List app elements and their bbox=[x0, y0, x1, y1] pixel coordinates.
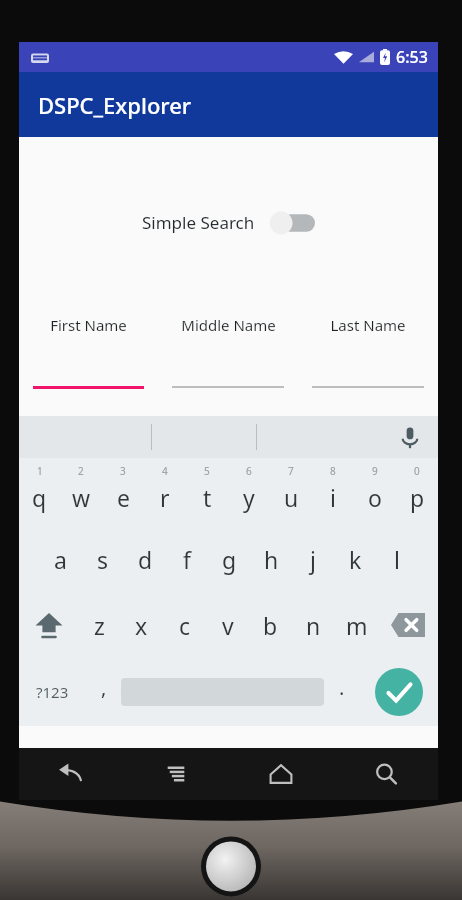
button[interactable]: l bbox=[376, 526, 418, 592]
button[interactable]: 9 bbox=[354, 458, 396, 526]
staticText: c bbox=[179, 610, 191, 641]
button[interactable]: Done bbox=[359, 658, 438, 726]
staticText: ?123 bbox=[36, 682, 69, 702]
button[interactable]: Home bbox=[228, 748, 333, 800]
staticText: h bbox=[264, 544, 279, 575]
button[interactable]: 5 bbox=[186, 458, 228, 526]
button[interactable]: , bbox=[86, 658, 121, 726]
button[interactable]: Middle Name bbox=[158, 315, 298, 388]
staticText: p bbox=[410, 482, 425, 513]
staticText: 4 bbox=[162, 464, 168, 478]
staticText: k bbox=[349, 544, 362, 575]
button[interactable]: s bbox=[82, 526, 124, 592]
button[interactable]: k bbox=[334, 526, 376, 592]
button[interactable]: g bbox=[208, 526, 250, 592]
staticText: z bbox=[94, 610, 105, 641]
button[interactable]: v bbox=[206, 592, 249, 658]
button[interactable]: First Name bbox=[19, 315, 158, 389]
staticText: l bbox=[394, 544, 400, 575]
staticText: u bbox=[284, 482, 299, 513]
staticText: 7 bbox=[288, 464, 294, 478]
button[interactable]: x bbox=[120, 592, 163, 658]
staticText: , bbox=[101, 674, 107, 701]
button[interactable]: 4 bbox=[144, 458, 186, 526]
button[interactable]: m bbox=[335, 592, 378, 658]
staticText: Simple Search bbox=[142, 211, 255, 234]
button[interactable]: j bbox=[292, 526, 334, 592]
staticText: DSPC_Explorer bbox=[38, 90, 192, 120]
button[interactable]: 7 bbox=[270, 458, 312, 526]
staticText: g bbox=[222, 544, 237, 575]
staticText: 0 bbox=[414, 464, 420, 478]
button[interactable]: Voice input bbox=[396, 423, 424, 451]
staticText: 6 bbox=[246, 464, 252, 478]
button[interactable]: . bbox=[324, 658, 359, 726]
button[interactable]: 2 bbox=[60, 458, 102, 526]
button[interactable]: Space bbox=[121, 658, 324, 726]
staticText: 3 bbox=[120, 464, 126, 478]
button[interactable]: Last Name bbox=[298, 315, 438, 388]
staticText: Middle Name bbox=[181, 315, 276, 335]
button[interactable]: 0 bbox=[396, 458, 438, 526]
staticText: v bbox=[222, 610, 234, 641]
staticText: 8 bbox=[330, 464, 336, 478]
staticText: r bbox=[160, 482, 170, 513]
staticText: 1 bbox=[37, 464, 43, 478]
button[interactable]: 1 bbox=[19, 458, 60, 526]
staticText: x bbox=[135, 610, 148, 641]
button[interactable]: z bbox=[78, 592, 120, 658]
staticText: First Name bbox=[50, 315, 127, 335]
button[interactable]: Simple Search bbox=[136, 207, 321, 238]
staticText: e bbox=[117, 482, 130, 513]
staticText: n bbox=[306, 610, 321, 641]
staticText: 9 bbox=[372, 464, 378, 478]
button[interactable]: c bbox=[163, 592, 206, 658]
staticText: q bbox=[32, 482, 47, 513]
button[interactable]: b bbox=[249, 592, 292, 658]
staticText: . bbox=[339, 674, 345, 701]
staticText: i bbox=[330, 482, 336, 513]
staticText: s bbox=[97, 544, 109, 575]
staticText: y bbox=[243, 482, 255, 513]
staticText: 2 bbox=[78, 464, 84, 478]
staticText: t bbox=[203, 482, 212, 513]
staticText: d bbox=[138, 544, 153, 575]
staticText: b bbox=[263, 610, 278, 641]
staticText: a bbox=[54, 544, 67, 575]
button[interactable]: Shift bbox=[19, 592, 78, 658]
button[interactable]: 3 bbox=[102, 458, 144, 526]
staticText: 5 bbox=[204, 464, 210, 478]
button[interactable]: 8 bbox=[312, 458, 354, 526]
button[interactable]: d bbox=[124, 526, 166, 592]
button[interactable]: Backspace bbox=[378, 592, 438, 658]
button[interactable]: Back bbox=[19, 748, 123, 800]
staticText: j bbox=[310, 544, 316, 575]
button[interactable]: Search bbox=[333, 748, 438, 800]
button[interactable]: n bbox=[292, 592, 335, 658]
staticText: Last Name bbox=[330, 315, 406, 335]
staticText: f bbox=[183, 544, 191, 575]
staticText: 6:53 bbox=[396, 46, 428, 68]
button[interactable]: f bbox=[166, 526, 208, 592]
staticText: o bbox=[368, 482, 382, 513]
staticText: w bbox=[72, 482, 91, 513]
button[interactable]: ?123 bbox=[19, 658, 86, 726]
button[interactable]: h bbox=[250, 526, 292, 592]
button[interactable]: Recents bbox=[123, 748, 228, 800]
staticText: m bbox=[346, 610, 368, 641]
button[interactable]: 6 bbox=[228, 458, 270, 526]
button[interactable]: a bbox=[39, 526, 82, 592]
